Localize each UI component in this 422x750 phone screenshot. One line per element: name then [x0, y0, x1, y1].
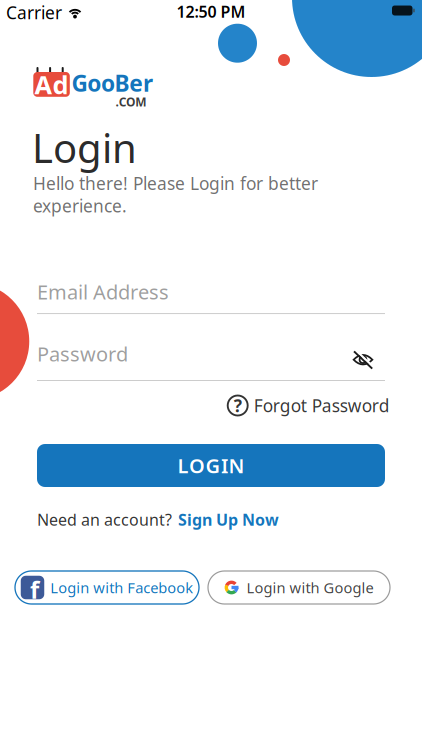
staticText: Hello there! Please Login for better [33, 172, 318, 195]
staticText: .COM [115, 94, 146, 110]
staticText: f [30, 574, 39, 605]
button[interactable]: Show password [352, 350, 374, 370]
button[interactable]: Login with Google [208, 571, 390, 604]
staticText: ? [234, 394, 242, 417]
button[interactable]: Sign Up Now [178, 509, 279, 530]
staticText: GooBer [71, 68, 153, 98]
staticText: experience. [33, 194, 127, 217]
staticText: LOGIN [177, 452, 244, 479]
button[interactable]: Password [37, 340, 385, 381]
button[interactable]: ? [228, 394, 390, 417]
staticText: Email Address [37, 278, 169, 305]
staticText: 12:50 PM [176, 1, 245, 22]
staticText: Ad [34, 68, 68, 101]
button[interactable]: LOGIN [37, 444, 385, 487]
button[interactable]: f [15, 571, 199, 604]
staticText: Login with Google [246, 578, 373, 597]
staticText: Carrier [6, 1, 62, 24]
button[interactable]: Email Address [37, 278, 385, 307]
staticText: Sign Up Now [178, 509, 279, 530]
staticText: Password [37, 340, 128, 367]
staticText: Login [32, 121, 137, 174]
staticText: Login with Facebook [50, 578, 193, 597]
staticText: Forgot Password [254, 394, 390, 417]
staticText: Need an account? [37, 509, 172, 530]
